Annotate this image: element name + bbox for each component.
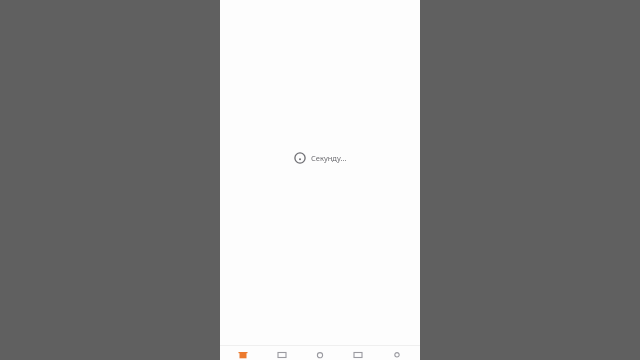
staticText: Секунду... bbox=[311, 153, 347, 163]
button[interactable]: Catalog bbox=[267, 346, 297, 360]
button[interactable]: Orders bbox=[343, 346, 373, 360]
button[interactable]: Home bbox=[228, 346, 258, 360]
button[interactable]: Cart bbox=[305, 346, 335, 360]
button[interactable]: Loading bbox=[294, 152, 347, 164]
button[interactable]: Profile bbox=[382, 346, 412, 360]
other: Loading bbox=[294, 152, 306, 164]
